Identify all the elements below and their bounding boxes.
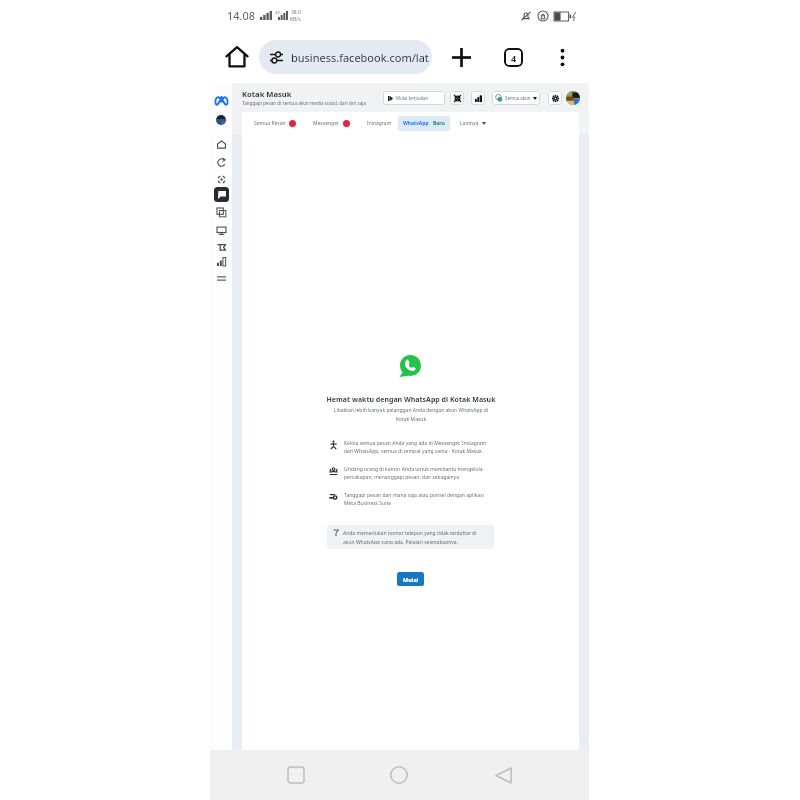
staticText: Tanggapi pesan di semua akun media sosia… — [242, 100, 367, 106]
staticText: business.facebook.com/lat — [291, 50, 429, 65]
staticText: Kotak Masuk — [242, 89, 292, 99]
button[interactable]: Ads — [214, 223, 229, 238]
staticText: Baru — [433, 120, 445, 127]
staticText: WhatsApp — [403, 120, 429, 127]
button[interactable]: Back — [486, 758, 520, 792]
button[interactable]: Messenger — [313, 120, 350, 127]
button[interactable]: Recents — [279, 758, 313, 792]
staticText: Undang orang di kantor Anda untuk memban… — [344, 466, 492, 481]
staticText: Semua Pesan — [254, 120, 286, 127]
staticText: 38.0 — [291, 9, 301, 16]
button[interactable]: business.facebook.com/lat — [259, 40, 432, 74]
button[interactable]: Inbox — [214, 187, 229, 202]
button[interactable]: Settings — [548, 91, 562, 105]
button[interactable]: Profile — [216, 115, 226, 125]
button[interactable]: Meta — [215, 94, 228, 107]
staticText: Anda memerlukan nomor telepon yang tidak… — [343, 530, 488, 544]
button[interactable]: Insights — [471, 91, 485, 105]
staticText: Mulai berjualan — [396, 95, 429, 101]
staticText: Lainnya — [460, 120, 479, 127]
staticText: Libatkan lebih banyak pelanggan Anda den… — [330, 407, 492, 423]
button[interactable]: Semua akun — [492, 91, 540, 105]
button[interactable]: Tabs — [498, 42, 528, 72]
button[interactable]: Account — [566, 91, 580, 105]
button[interactable]: Insights — [214, 254, 229, 269]
button[interactable]: Mulai — [397, 572, 424, 586]
button[interactable]: Automation — [450, 91, 464, 105]
button[interactable]: New tab — [446, 42, 476, 72]
button[interactable]: WhatsApp — [398, 116, 450, 131]
button[interactable]: More options — [547, 42, 577, 72]
button[interactable]: Share — [214, 239, 229, 254]
staticText: Instagram — [367, 120, 392, 127]
button[interactable]: Instagram — [367, 120, 392, 127]
staticText: Semua akun — [505, 95, 531, 101]
staticText: Tanggapi pesan dari mana saja atau ponse… — [344, 492, 492, 507]
staticText: 4G — [275, 10, 281, 16]
button[interactable]: Semua Pesan — [254, 120, 296, 127]
button[interactable]: Refresh — [214, 155, 229, 170]
button[interactable]: Home — [222, 42, 252, 72]
staticText: Mulai — [403, 576, 419, 583]
button[interactable]: Explore — [214, 172, 229, 187]
staticText: Hemat waktu dengan WhatsApp di Kotak Mas… — [326, 395, 496, 405]
staticText: Kelola semua pesan Anda yang ada di Mess… — [344, 440, 492, 455]
button[interactable]: Posts — [214, 205, 229, 220]
staticText: KB/s — [290, 16, 301, 23]
staticText: Messenger — [313, 120, 340, 127]
staticText: 14.08 — [227, 8, 256, 23]
button[interactable]: Home — [382, 758, 416, 792]
button[interactable]: Lainnya — [460, 120, 486, 127]
button[interactable]: More — [214, 271, 229, 286]
staticText: 4 — [511, 52, 517, 64]
button[interactable]: Mulai berjualan — [383, 91, 445, 105]
button[interactable]: Home — [214, 137, 229, 152]
